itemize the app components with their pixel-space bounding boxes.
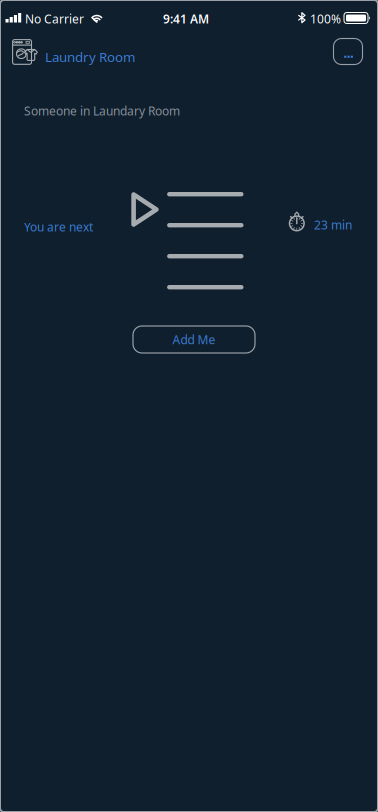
button[interactable]: Add Me [133,326,255,353]
button[interactable]: More options [333,38,362,64]
staticText: 100% [310,11,341,27]
staticText: You are next [24,219,93,235]
staticText: Add Me [172,331,215,347]
staticText: 9:41 AM [163,11,209,27]
staticText: Someone in Laundary Room [24,103,180,119]
button[interactable]: Laundry Room [12,37,136,67]
staticText: Laundry Room [45,48,135,66]
staticText: 23 min [314,217,352,233]
staticText: No Carrier [25,11,84,27]
